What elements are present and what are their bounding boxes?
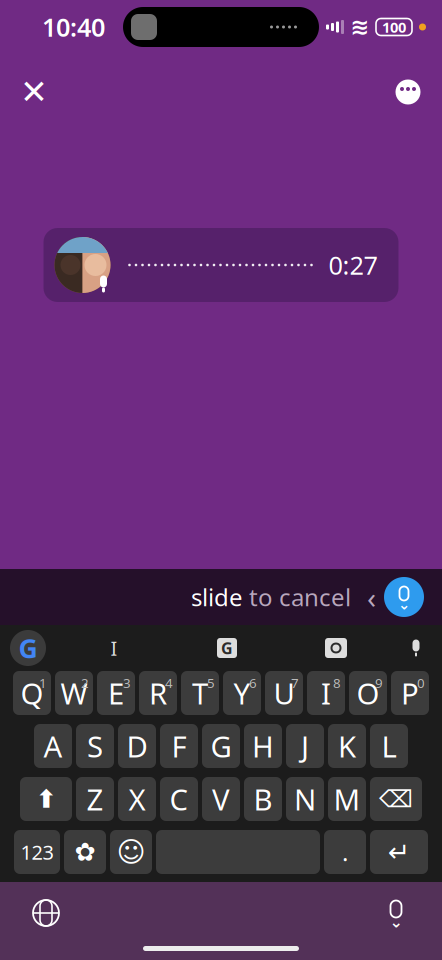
staticText: 1 [39,674,47,692]
staticText: 2 [81,674,89,692]
staticText: 3 [123,674,131,692]
button[interactable]: Translate [172,626,282,670]
staticText: to cancel [243,581,351,613]
button[interactable]: Q [13,671,51,715]
button[interactable]: P [391,671,429,715]
button[interactable]: E [97,671,135,715]
button[interactable]: Theme [384,68,432,116]
button[interactable]: M [328,777,366,821]
button[interactable]: H [244,724,282,768]
staticText: O [356,673,379,712]
button[interactable]: Return [370,830,428,874]
staticText: ↵ [388,837,410,867]
staticText: G [221,637,233,659]
staticText: V [212,779,230,818]
staticText: S [87,726,103,765]
staticText: Y [233,673,250,712]
staticText: H [252,726,274,765]
button[interactable]: Voice input [390,626,442,670]
button[interactable]: L [370,724,408,768]
staticText: X [128,779,145,818]
staticText: 100 [382,17,406,37]
staticText: 7 [291,674,299,692]
staticText: A [43,726,62,765]
staticText: L [381,726,396,765]
staticText: T [192,673,208,712]
button[interactable]: Z [76,777,114,821]
staticText: slide [191,581,243,613]
staticText: K [338,726,356,765]
staticText: 6 [249,674,257,692]
button[interactable]: D [118,724,156,768]
staticText: F [171,726,186,765]
button[interactable]: V [202,777,240,821]
staticText: 0:27 [328,248,377,282]
staticText: E [108,673,124,712]
button[interactable]: Image search [282,626,390,670]
button[interactable]: Change language [18,888,74,938]
staticText: N [294,779,316,818]
staticText: Q [20,673,43,712]
staticText: G [18,630,37,666]
button[interactable]: X [118,777,156,821]
staticText: 10:40 [42,10,105,44]
button[interactable]: R [139,671,177,715]
staticText: 123 [20,839,53,865]
staticText: 4 [165,674,173,692]
button[interactable]: K [328,724,366,768]
staticText: R [149,673,167,712]
button[interactable]: G [202,724,240,768]
staticText: ⌄ [398,596,410,613]
button[interactable]: Voice input [368,888,424,938]
button[interactable]: Settings [64,830,106,874]
staticText: ⬆ [35,785,56,813]
staticText: U [273,673,294,712]
staticText: ⌄ [389,913,402,931]
button[interactable]: . [324,830,366,874]
button[interactable]: T [181,671,219,715]
button[interactable]: Emoji [110,830,152,874]
button[interactable]: S [76,724,114,768]
staticText: 0 [417,674,425,692]
button[interactable]: B [244,777,282,821]
button[interactable]: Shift [20,777,72,821]
staticText: C [169,779,188,818]
staticText: M [333,779,360,818]
button[interactable]: Recording microphone [376,569,432,625]
staticText: W [60,673,87,712]
staticText: I [321,673,331,712]
button[interactable]: F [160,724,198,768]
staticText: P [401,673,419,712]
staticText: ⌫ [379,785,413,813]
staticText: . [342,836,348,868]
staticText: ✿ [74,838,95,866]
staticText: J [301,726,309,765]
button[interactable]: W [55,671,93,715]
staticText: I [110,635,117,661]
button[interactable]: A [34,724,72,768]
button[interactable]: O [349,671,387,715]
button[interactable]: Clipboard [56,626,172,670]
button[interactable]: C [160,777,198,821]
button[interactable]: J [286,724,324,768]
button[interactable]: U [265,671,303,715]
button[interactable]: Close [10,68,58,116]
button[interactable]: Google [0,626,56,670]
button[interactable]: Y [223,671,261,715]
staticText: 5 [207,674,215,692]
staticText: Z [86,779,103,818]
staticText: ‹ [351,577,376,616]
button[interactable]: Delete [370,777,422,821]
button[interactable]: 123 [14,830,60,874]
staticText: 9 [375,674,383,692]
staticText: ☺ [116,836,145,868]
staticText: ✕ [20,73,48,111]
staticText: ≋ [350,14,369,40]
staticText: B [253,779,272,818]
staticText: 8 [333,674,341,692]
button[interactable]: N [286,777,324,821]
button[interactable]: I [307,671,345,715]
staticText: D [126,726,147,765]
